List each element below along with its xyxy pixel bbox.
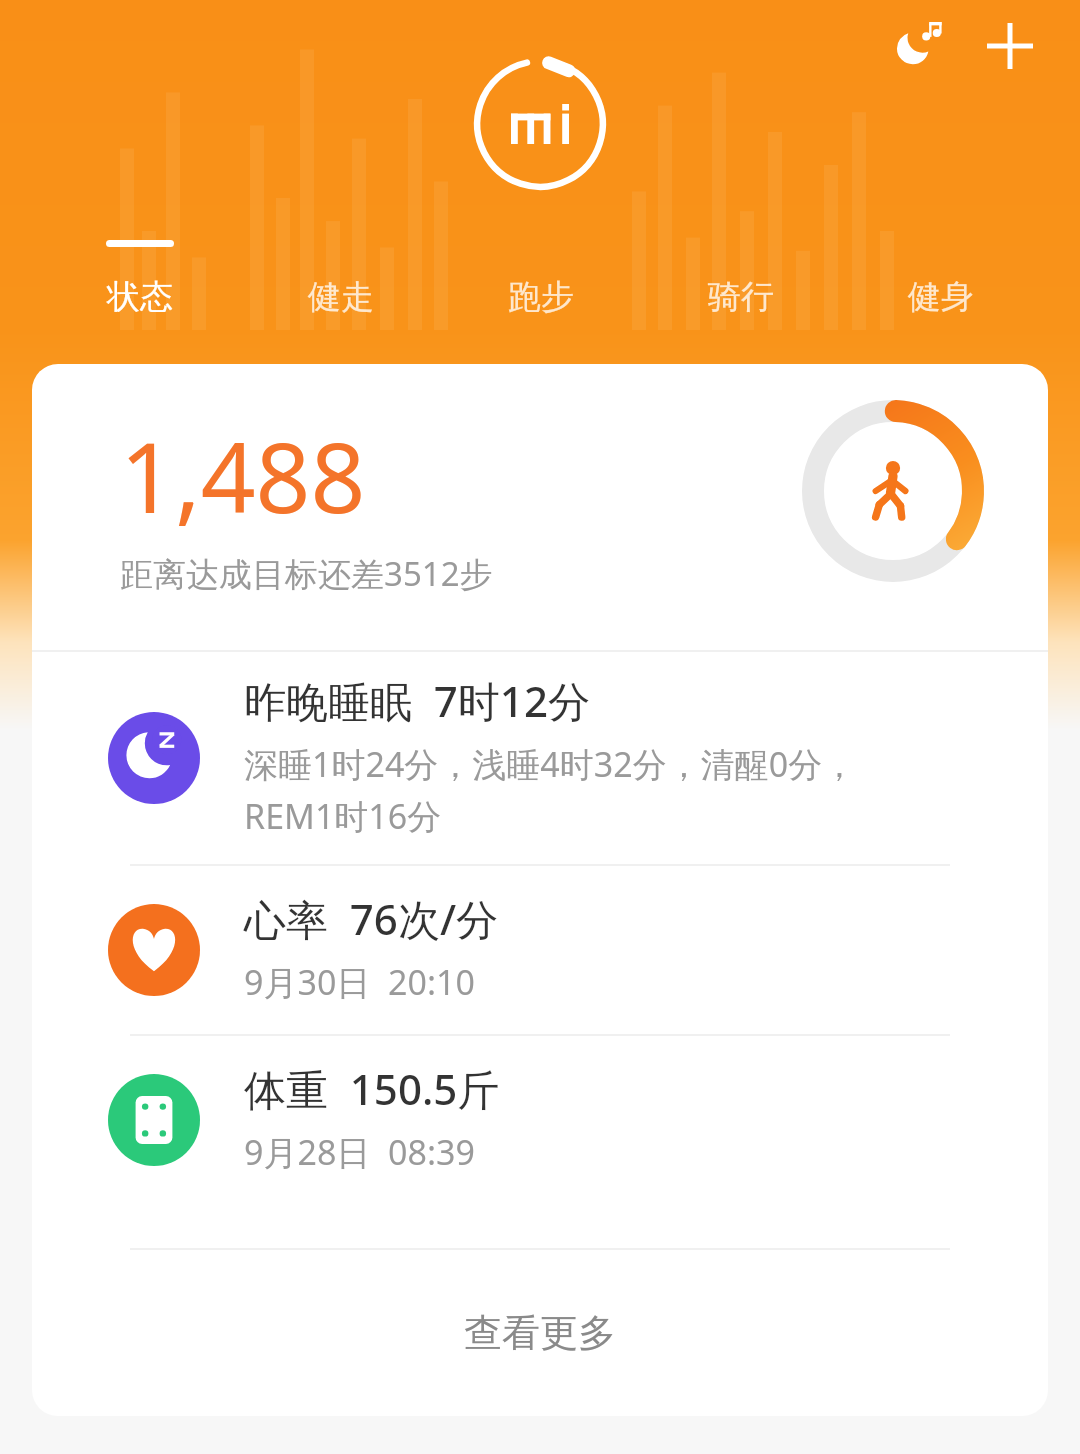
button[interactable]: 查看更多 <box>32 1250 1048 1416</box>
staticText: 深睡1时24分，浅睡4时32分，清醒0分， <box>244 741 857 787</box>
button[interactable]: 心率 76次/分 <box>32 866 1048 1034</box>
staticText: 状态 <box>107 276 173 318</box>
button[interactable]: Add <box>978 14 1042 78</box>
staticText: 健身 <box>908 276 974 318</box>
button[interactable]: 状态 <box>96 236 184 318</box>
staticText: 1,488 <box>120 410 366 541</box>
button[interactable]: 昨晚睡眠 7时12分 <box>32 652 1048 864</box>
button[interactable]: 跑步 <box>498 236 584 318</box>
staticText: 骑行 <box>708 276 774 318</box>
staticText: 心率 76次/分 <box>244 890 499 947</box>
staticText: 昨晚睡眠 7时12分 <box>244 672 590 729</box>
staticText: 9月28日 08:39 <box>244 1129 475 1175</box>
staticText: 健走 <box>308 276 374 318</box>
button[interactable]: 骑行 <box>698 236 784 318</box>
staticText: 9月30日 20:10 <box>244 959 475 1005</box>
staticText: 跑步 <box>508 276 574 318</box>
staticText: REM1时16分 <box>244 793 442 839</box>
button[interactable]: Sleep music <box>888 14 952 78</box>
button[interactable]: 健身 <box>898 236 984 318</box>
staticText: 体重 150.5斤 <box>244 1060 500 1117</box>
staticText: 查看更多 <box>464 1309 616 1357</box>
button[interactable]: 健走 <box>298 236 384 318</box>
button[interactable]: Step goal progress <box>800 398 986 584</box>
button[interactable]: 体重 150.5斤 <box>32 1036 1048 1204</box>
staticText: 距离达成目标还差3512步 <box>120 551 493 596</box>
